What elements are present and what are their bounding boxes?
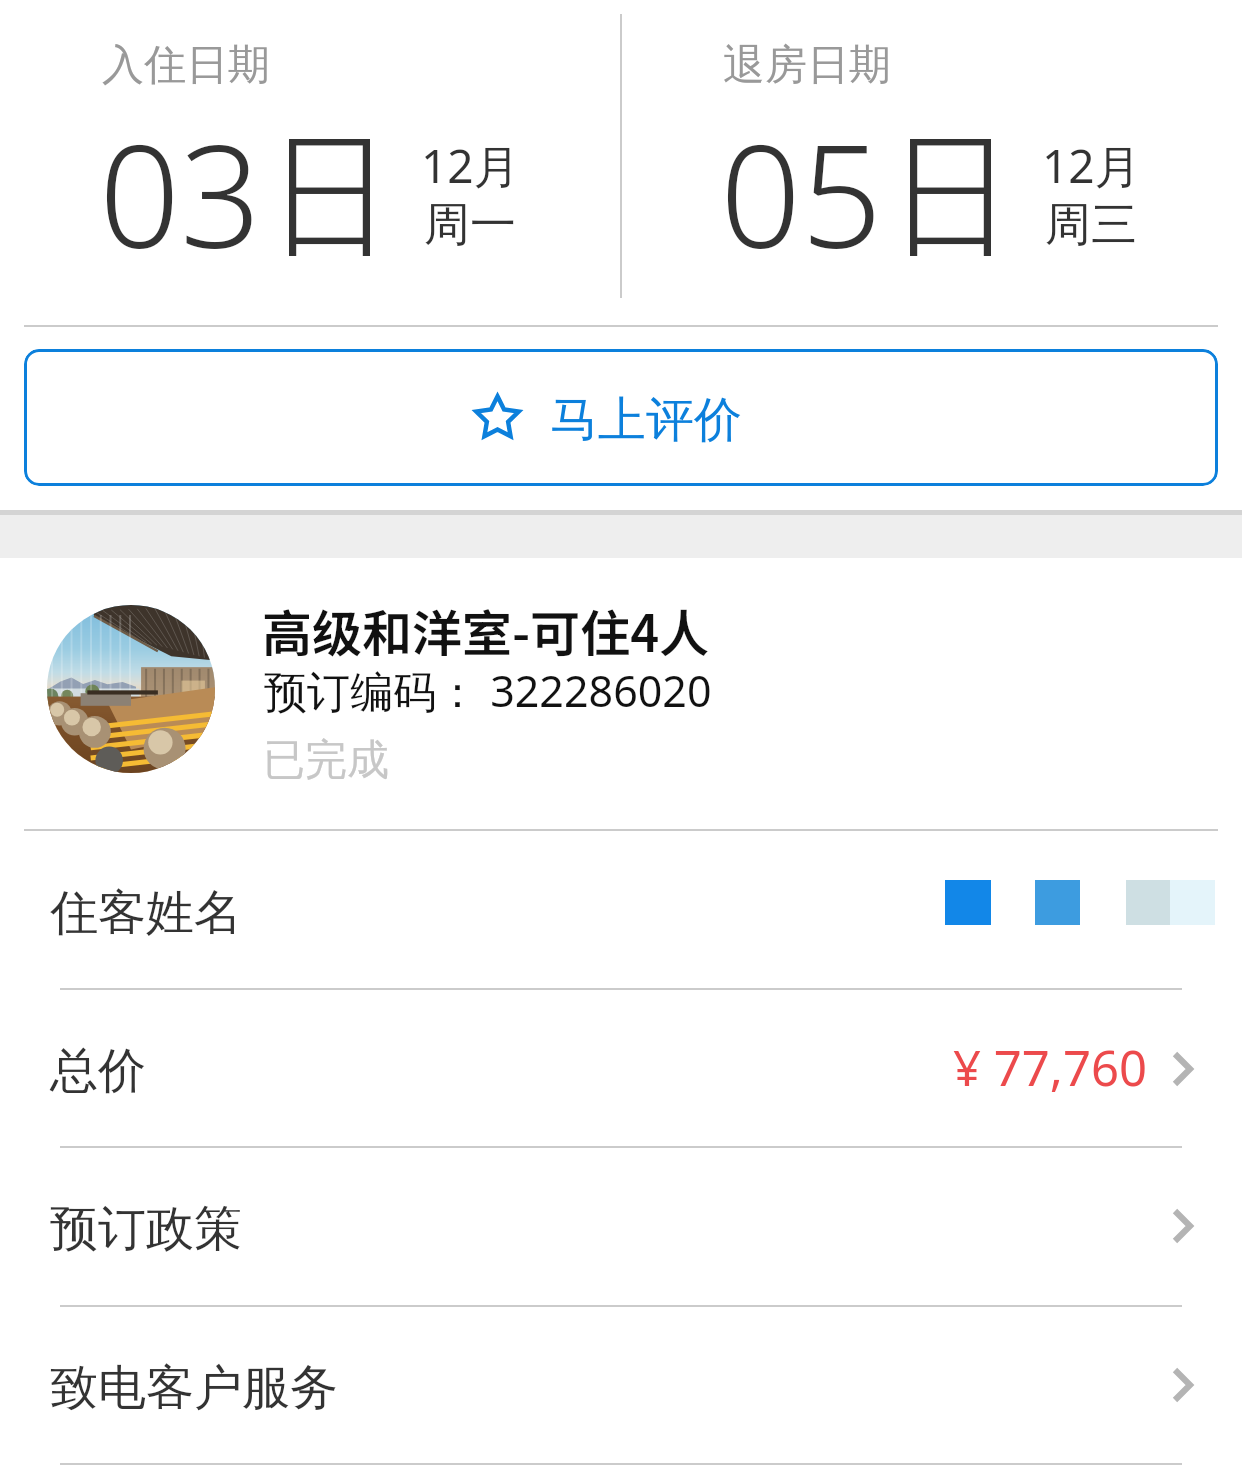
staticText: 高级和洋室-可住4人 <box>262 594 710 666</box>
button[interactable]: 致电客户服务 <box>0 1306 1242 1463</box>
staticText: 致电客户服务 <box>50 1358 338 1418</box>
other: More <box>1172 1367 1193 1403</box>
other: Rate now <box>473 393 522 441</box>
button[interactable]: Rate now <box>24 349 1218 486</box>
button[interactable]: 预订政策 <box>0 1147 1242 1305</box>
button[interactable]: 高级和洋室-可住4人 <box>0 558 1242 830</box>
other: More <box>1172 1208 1193 1244</box>
staticText: 退房日期 <box>723 39 891 92</box>
staticText: 05 <box>720 96 883 289</box>
staticText: 03 <box>99 96 262 289</box>
button[interactable]: 住客姓名 <box>0 831 1242 988</box>
staticText: 12月 <box>421 134 520 197</box>
staticText: 12月 <box>1042 134 1141 197</box>
other: More <box>1172 1051 1193 1087</box>
staticText: 已完成 <box>263 734 389 787</box>
button[interactable]: 退房日期 <box>621 0 1242 310</box>
staticText: 住客姓名 <box>50 883 242 943</box>
staticText: 预订编码： 322286020 <box>264 661 712 720</box>
staticText: 入住日期 <box>102 39 270 92</box>
button[interactable]: 总价 <box>0 989 1242 1146</box>
button[interactable]: 入住日期 <box>0 0 621 310</box>
staticText: 周三 <box>1045 196 1137 254</box>
staticText: 预订政策 <box>50 1199 242 1259</box>
staticText: ¥ 77,760 <box>953 1034 1148 1101</box>
staticText: 总价 <box>50 1041 146 1101</box>
staticText: 周一 <box>424 196 516 254</box>
staticText: 马上评价 <box>550 390 742 450</box>
